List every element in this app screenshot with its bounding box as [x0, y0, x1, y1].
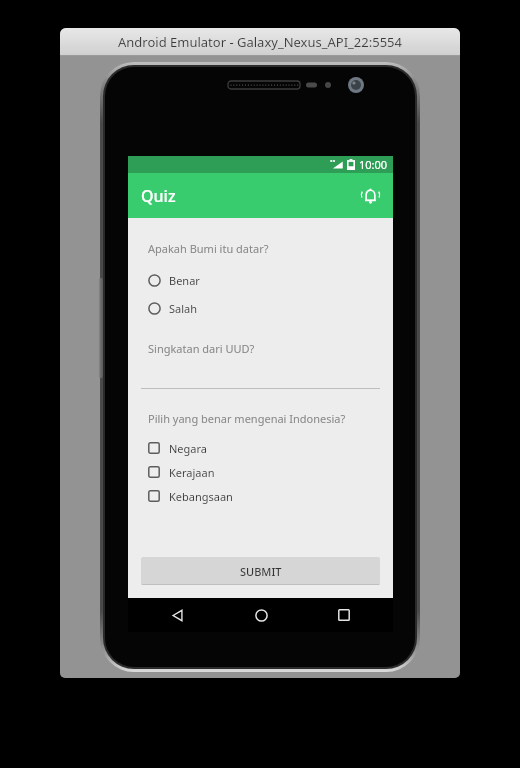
staticText: Apakah Bumi itu datar? — [148, 241, 269, 256]
button[interactable]: Notifications — [353, 179, 387, 213]
staticText: Android Emulator - Galaxy_Nexus_API_22:5… — [118, 33, 402, 51]
button[interactable]: SUBMIT — [141, 557, 380, 585]
staticText: 10:00 — [359, 157, 388, 172]
staticText: Salah — [169, 301, 198, 316]
staticText: Singkatan dari UUD? — [148, 341, 255, 356]
staticText: Kerajaan — [169, 465, 215, 480]
button[interactable]: Negara — [148, 439, 383, 457]
staticText: Quiz — [141, 185, 176, 207]
button[interactable]: Recents — [329, 600, 359, 630]
staticText: Pilih yang benar mengenai Indonesia? — [148, 411, 346, 426]
staticText: SUBMIT — [240, 564, 282, 579]
button[interactable]: Kebangsaan — [148, 487, 383, 505]
button[interactable]: Kerajaan — [148, 463, 383, 481]
button[interactable]: Home — [246, 600, 276, 630]
staticText: Kebangsaan — [169, 489, 233, 504]
button[interactable]: Back — [162, 600, 192, 630]
button[interactable]: Benar — [148, 270, 383, 291]
button[interactable]: Salah — [148, 298, 383, 319]
staticText: Negara — [169, 441, 207, 456]
staticText: Benar — [169, 273, 200, 288]
